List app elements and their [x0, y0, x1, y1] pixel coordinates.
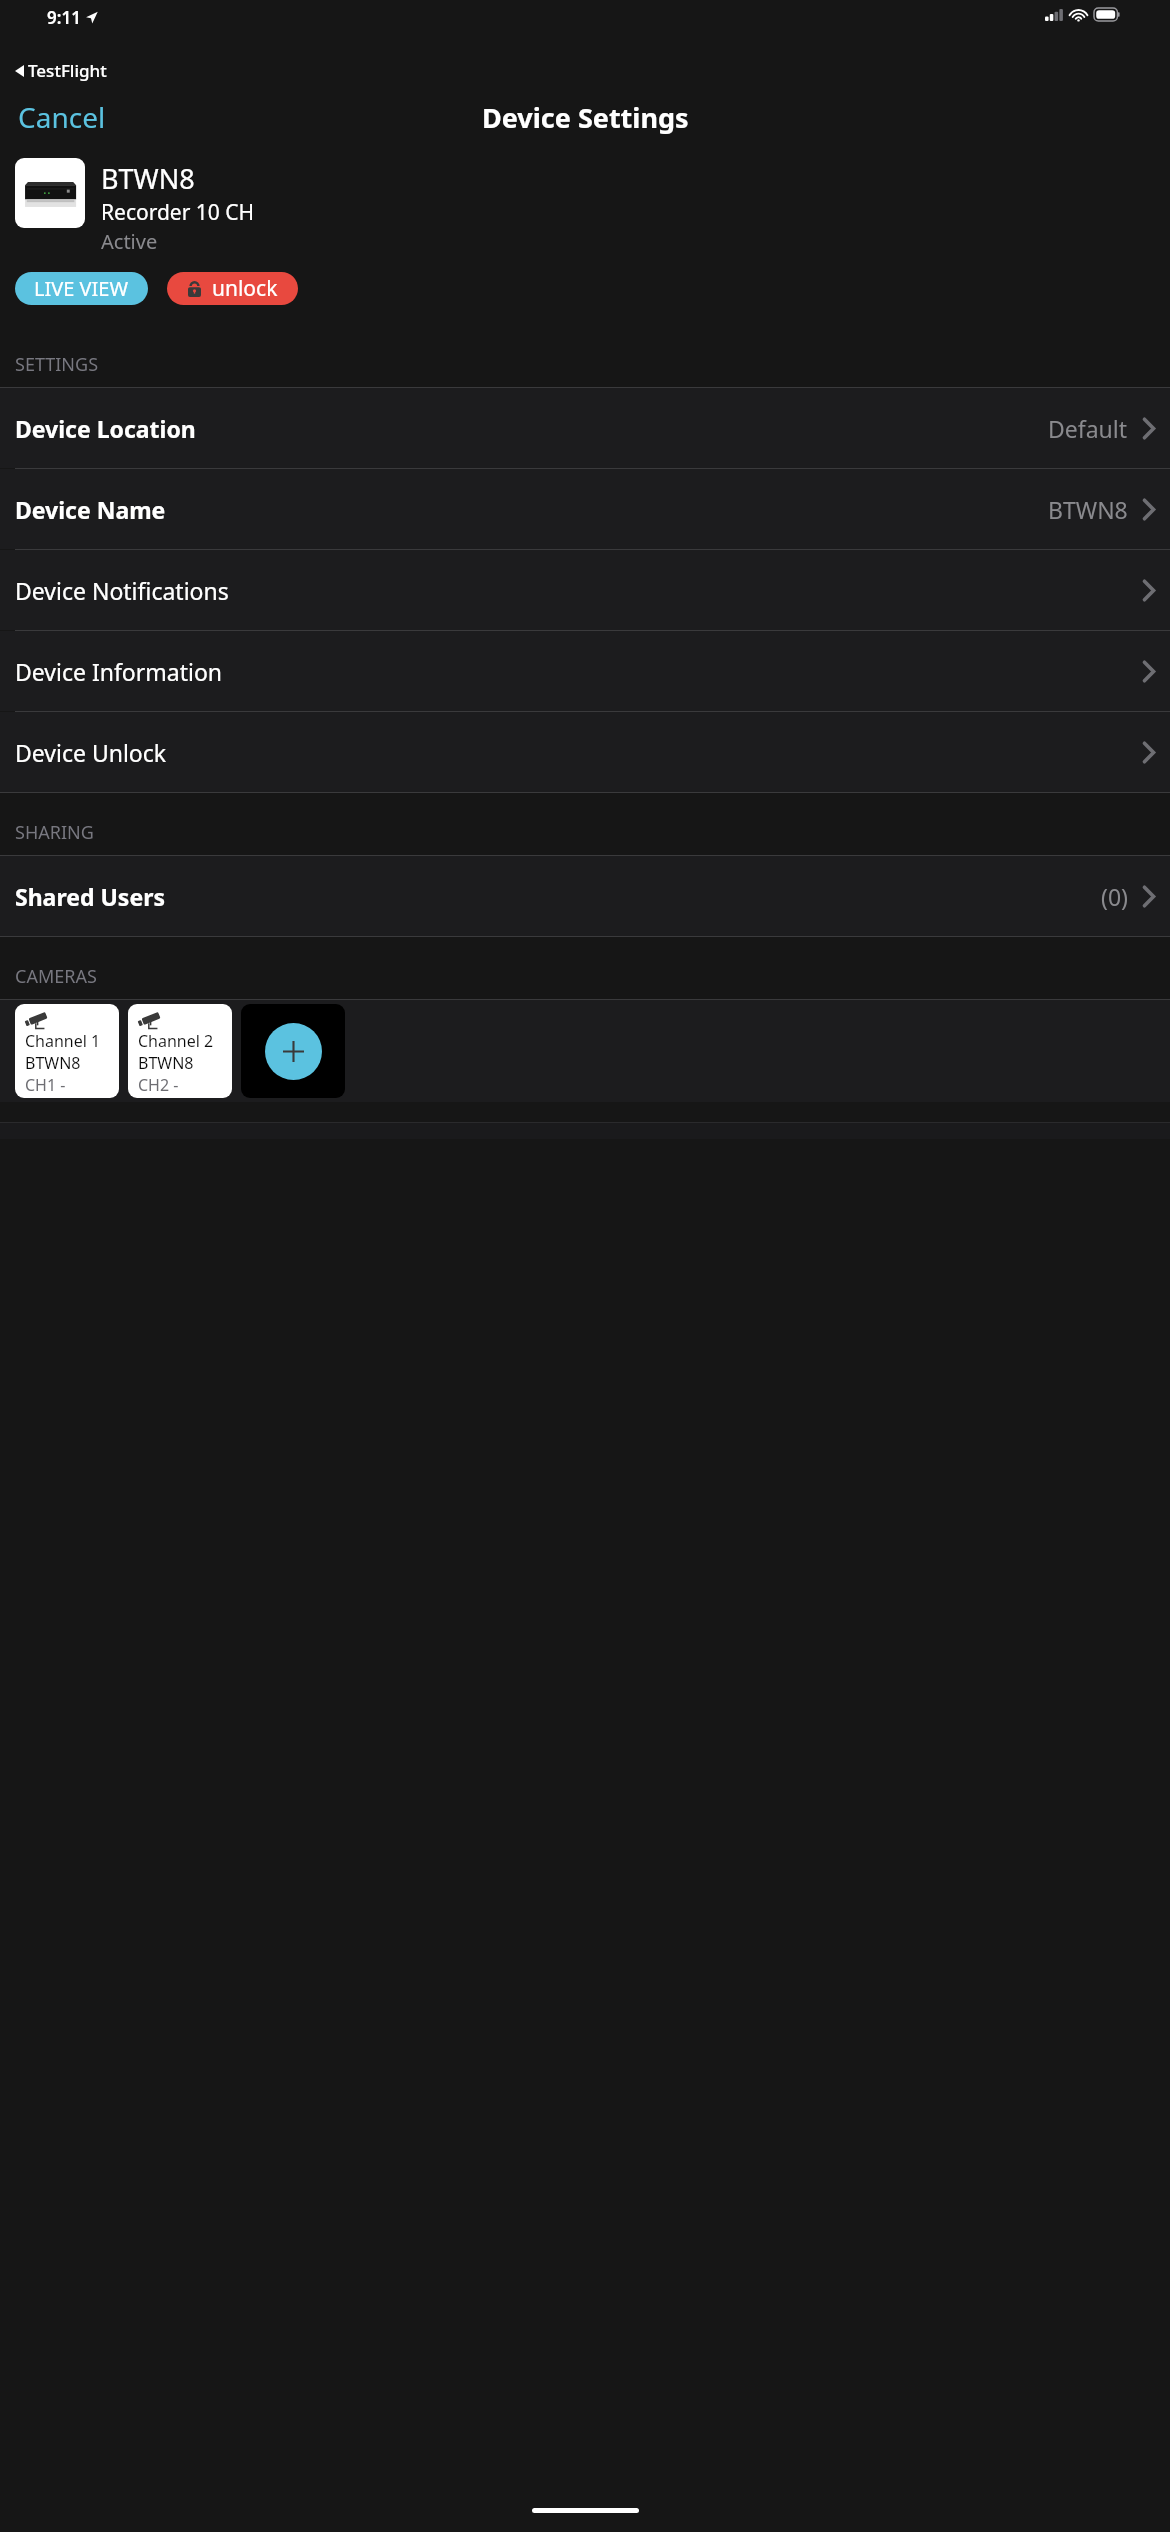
staticText: unlock [212, 274, 278, 303]
button[interactable]: Device Notifications [0, 550, 1170, 630]
button[interactable]: Channel 2 [128, 1004, 232, 1098]
staticText: Cancel [18, 98, 106, 136]
staticText: BTWN8 [1048, 494, 1128, 525]
button[interactable]: Shared Users [0, 856, 1170, 936]
staticText: 9:11 [47, 6, 81, 29]
staticText: BTWN8 [138, 1052, 194, 1074]
staticText: CAMERAS [15, 964, 97, 989]
staticText: Device Notifications [15, 575, 229, 606]
staticText: CH1 - Active [25, 1074, 113, 1096]
staticText: TestFlight [28, 59, 107, 82]
staticText: LIVE VIEW [34, 275, 129, 302]
staticText: Shared Users [15, 881, 165, 912]
staticText: Device Location [15, 413, 196, 444]
staticText: SETTINGS [15, 352, 99, 377]
staticText: Device Name [15, 494, 166, 525]
button[interactable]: Device Location [0, 388, 1170, 468]
staticText: CH2 - Active [138, 1074, 226, 1096]
button[interactable]: TestFlight [15, 59, 107, 82]
button[interactable]: BTWN8 [15, 158, 1155, 255]
staticText: Device Unlock [15, 737, 167, 768]
button[interactable]: LIVE VIEW [15, 272, 148, 305]
staticText: Active [101, 228, 158, 255]
staticText: BTWN8 [25, 1052, 81, 1074]
staticText: Channel 2 [138, 1030, 214, 1052]
staticText: Device Information [15, 656, 223, 687]
staticText: SHARING [15, 820, 94, 845]
button[interactable]: Device Unlock [0, 712, 1170, 792]
staticText: Channel 1 [25, 1030, 101, 1052]
staticText: Recorder 10 CH [101, 198, 255, 227]
staticText: Default [1048, 413, 1128, 444]
button[interactable]: Channel 1 [15, 1004, 119, 1098]
button[interactable]: Device Information [0, 631, 1170, 711]
button[interactable]: Device Name [0, 469, 1170, 549]
staticText: (0) [1101, 881, 1128, 912]
button[interactable]: unlock [167, 272, 298, 305]
button[interactable]: Cancel [8, 92, 116, 142]
staticText: BTWN8 [101, 160, 195, 197]
button[interactable]: Add camera [241, 1004, 345, 1098]
staticText: Device Settings [482, 99, 689, 136]
